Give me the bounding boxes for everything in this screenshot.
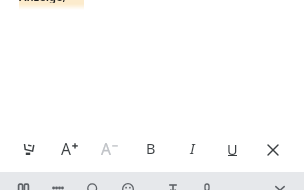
staticText: A <box>61 138 71 158</box>
button[interactable]: Increase text size <box>50 130 90 170</box>
button[interactable]: Voice input <box>198 183 216 190</box>
button[interactable]: Translate <box>164 183 182 190</box>
button[interactable]: More options <box>271 183 289 190</box>
other: Underline <box>225 139 239 161</box>
button[interactable]: Clipboard <box>49 183 67 190</box>
staticText: A <box>101 138 111 158</box>
button[interactable]: Toolbar <box>14 183 32 190</box>
button[interactable]: Close <box>253 130 293 170</box>
button[interactable]: Underline <box>212 130 252 170</box>
other: Highlight <box>23 144 35 157</box>
button[interactable]: Search <box>84 183 102 190</box>
button[interactable]: I <box>172 130 212 170</box>
button[interactable]: Decrease text size <box>90 130 130 170</box>
staticText: U <box>227 139 238 159</box>
other: Decrease text size <box>103 140 118 160</box>
button[interactable]: Highlight <box>9 130 49 170</box>
staticText: Anzeige, 2/3 <box>19 0 84 3</box>
staticText: B <box>146 140 156 160</box>
other: Close <box>268 145 278 155</box>
button[interactable]: B <box>131 130 171 170</box>
other: Increase text size <box>63 140 78 160</box>
staticText: I <box>190 140 195 160</box>
button[interactable]: Emoji <box>119 183 137 190</box>
